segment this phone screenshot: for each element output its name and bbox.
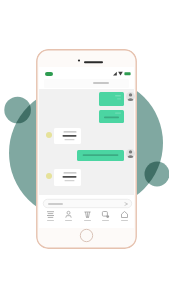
button[interactable] — [45, 72, 53, 76]
button[interactable] — [54, 128, 81, 144]
button[interactable] — [43, 199, 132, 208]
button[interactable]: Profile — [60, 210, 76, 223]
button[interactable] — [54, 169, 81, 186]
button[interactable] — [77, 150, 124, 161]
button[interactable]: Contact avatar — [126, 149, 135, 158]
button[interactable]: Home — [116, 210, 132, 223]
button[interactable]: User avatar — [46, 132, 52, 138]
button[interactable]: Home button — [79, 228, 93, 242]
button[interactable] — [99, 110, 124, 123]
button[interactable]: Contact avatar — [126, 92, 135, 101]
button[interactable] — [44, 79, 129, 88]
button[interactable] — [99, 92, 124, 106]
button[interactable]: Chat — [97, 210, 113, 223]
button[interactable]: Cart — [79, 210, 95, 223]
button[interactable]: User avatar — [46, 173, 52, 179]
button[interactable]: Menu — [42, 210, 58, 223]
